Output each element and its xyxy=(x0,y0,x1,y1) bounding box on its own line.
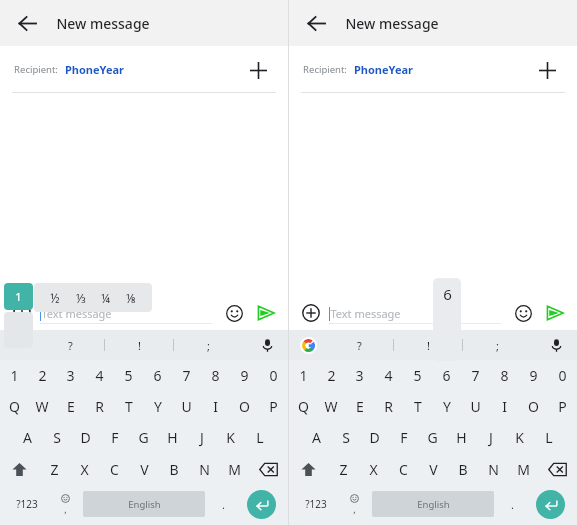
button[interactable]: Add recipient xyxy=(531,54,563,86)
button[interactable]: B xyxy=(448,453,478,486)
button[interactable]: O xyxy=(519,391,548,422)
button[interactable]: P xyxy=(548,391,577,422)
button[interactable]: S xyxy=(42,422,71,453)
button[interactable]: A xyxy=(13,422,42,453)
button[interactable]: Emoji and comma xyxy=(339,488,369,520)
button[interactable]: N xyxy=(189,453,219,486)
button[interactable]: X xyxy=(69,453,99,486)
button[interactable]: ? xyxy=(59,334,81,356)
button[interactable]: H xyxy=(447,422,476,453)
button[interactable]: . xyxy=(497,488,527,520)
button[interactable]: 5 xyxy=(114,360,143,391)
button[interactable]: D xyxy=(71,422,100,453)
button[interactable]: 9 xyxy=(519,360,548,391)
button[interactable]: 7 xyxy=(461,360,490,391)
button[interactable]: W xyxy=(28,391,56,422)
button[interactable]: 0 xyxy=(548,360,577,391)
button[interactable]: U xyxy=(461,391,490,422)
button[interactable]: P xyxy=(259,391,288,422)
button[interactable]: 9 xyxy=(230,360,259,391)
button[interactable]: Back xyxy=(10,6,44,40)
button[interactable]: 8 xyxy=(201,360,230,391)
button[interactable]: ? xyxy=(348,334,370,356)
button[interactable]: Google search xyxy=(295,332,321,358)
button[interactable]: T xyxy=(114,391,143,422)
button[interactable]: . xyxy=(208,488,238,520)
button[interactable]: T xyxy=(403,391,432,422)
button[interactable]: G xyxy=(418,422,447,453)
button[interactable]: ! xyxy=(128,334,150,356)
button[interactable]: H xyxy=(158,422,187,453)
button[interactable]: Add attachment xyxy=(8,299,36,327)
button[interactable]: R xyxy=(374,391,403,422)
button[interactable]: C xyxy=(99,453,129,486)
button[interactable]: Emoji xyxy=(509,299,537,327)
button[interactable]: 6 xyxy=(432,360,461,391)
button[interactable]: Backspace xyxy=(538,453,577,486)
button[interactable]: Z xyxy=(328,453,358,486)
button[interactable]: U xyxy=(172,391,201,422)
button[interactable]: I xyxy=(201,391,230,422)
button[interactable]: 1 xyxy=(289,360,317,391)
button[interactable]: B xyxy=(159,453,189,486)
button[interactable]: Q xyxy=(289,391,317,422)
button[interactable]: Emoji xyxy=(220,299,248,327)
button[interactable]: Enter xyxy=(527,488,573,520)
button[interactable]: 3 xyxy=(345,360,374,391)
button[interactable]: 1 xyxy=(0,360,28,391)
button[interactable]: Emoji and comma xyxy=(50,488,80,520)
button[interactable]: M xyxy=(508,453,538,486)
button[interactable]: 4 xyxy=(374,360,403,391)
button[interactable]: E xyxy=(345,391,374,422)
button[interactable]: Add attachment xyxy=(297,299,325,327)
button[interactable]: 7 xyxy=(172,360,201,391)
button[interactable]: L xyxy=(534,422,563,453)
button[interactable]: M xyxy=(219,453,249,486)
button[interactable]: English xyxy=(372,491,494,517)
button[interactable]: F xyxy=(389,422,418,453)
button[interactable]: V xyxy=(418,453,448,486)
button[interactable]: Backspace xyxy=(249,453,288,486)
button[interactable]: Enter xyxy=(238,488,284,520)
button[interactable]: 2 xyxy=(28,360,56,391)
button[interactable]: English xyxy=(83,491,205,517)
button[interactable]: ; xyxy=(197,334,219,356)
button[interactable]: F xyxy=(100,422,129,453)
button[interactable]: Shift xyxy=(289,453,328,486)
button[interactable]: K xyxy=(505,422,534,453)
button[interactable]: ; xyxy=(486,334,508,356)
button[interactable]: 2 xyxy=(317,360,345,391)
button[interactable]: S xyxy=(331,422,360,453)
button[interactable]: Q xyxy=(0,391,28,422)
button[interactable]: Back xyxy=(299,6,333,40)
button[interactable]: V xyxy=(129,453,159,486)
button[interactable]: ! xyxy=(417,334,439,356)
button[interactable]: 0 xyxy=(259,360,288,391)
button[interactable]: ?123 xyxy=(293,488,339,520)
button[interactable]: Send xyxy=(541,299,569,327)
button[interactable]: 8 xyxy=(490,360,519,391)
button[interactable]: D xyxy=(360,422,389,453)
button[interactable]: Voice input xyxy=(254,332,280,358)
button[interactable]: C xyxy=(388,453,418,486)
button[interactable]: Add recipient xyxy=(242,54,274,86)
button[interactable]: 4 xyxy=(85,360,114,391)
button[interactable]: 6 xyxy=(143,360,172,391)
button[interactable]: W xyxy=(317,391,345,422)
button[interactable]: Text message xyxy=(329,302,501,324)
button[interactable]: E xyxy=(56,391,85,422)
button[interactable]: 5 xyxy=(403,360,432,391)
button[interactable]: ?123 xyxy=(4,488,50,520)
button[interactable]: L xyxy=(245,422,274,453)
button[interactable]: J xyxy=(476,422,505,453)
button[interactable]: 3 xyxy=(56,360,85,391)
button[interactable]: J xyxy=(187,422,216,453)
button[interactable]: Send xyxy=(252,299,280,327)
button[interactable]: Voice input xyxy=(543,332,569,358)
button[interactable]: Text message xyxy=(40,302,212,324)
button[interactable]: K xyxy=(216,422,245,453)
button[interactable]: G xyxy=(129,422,158,453)
button[interactable]: R xyxy=(85,391,114,422)
button[interactable]: X xyxy=(358,453,388,486)
